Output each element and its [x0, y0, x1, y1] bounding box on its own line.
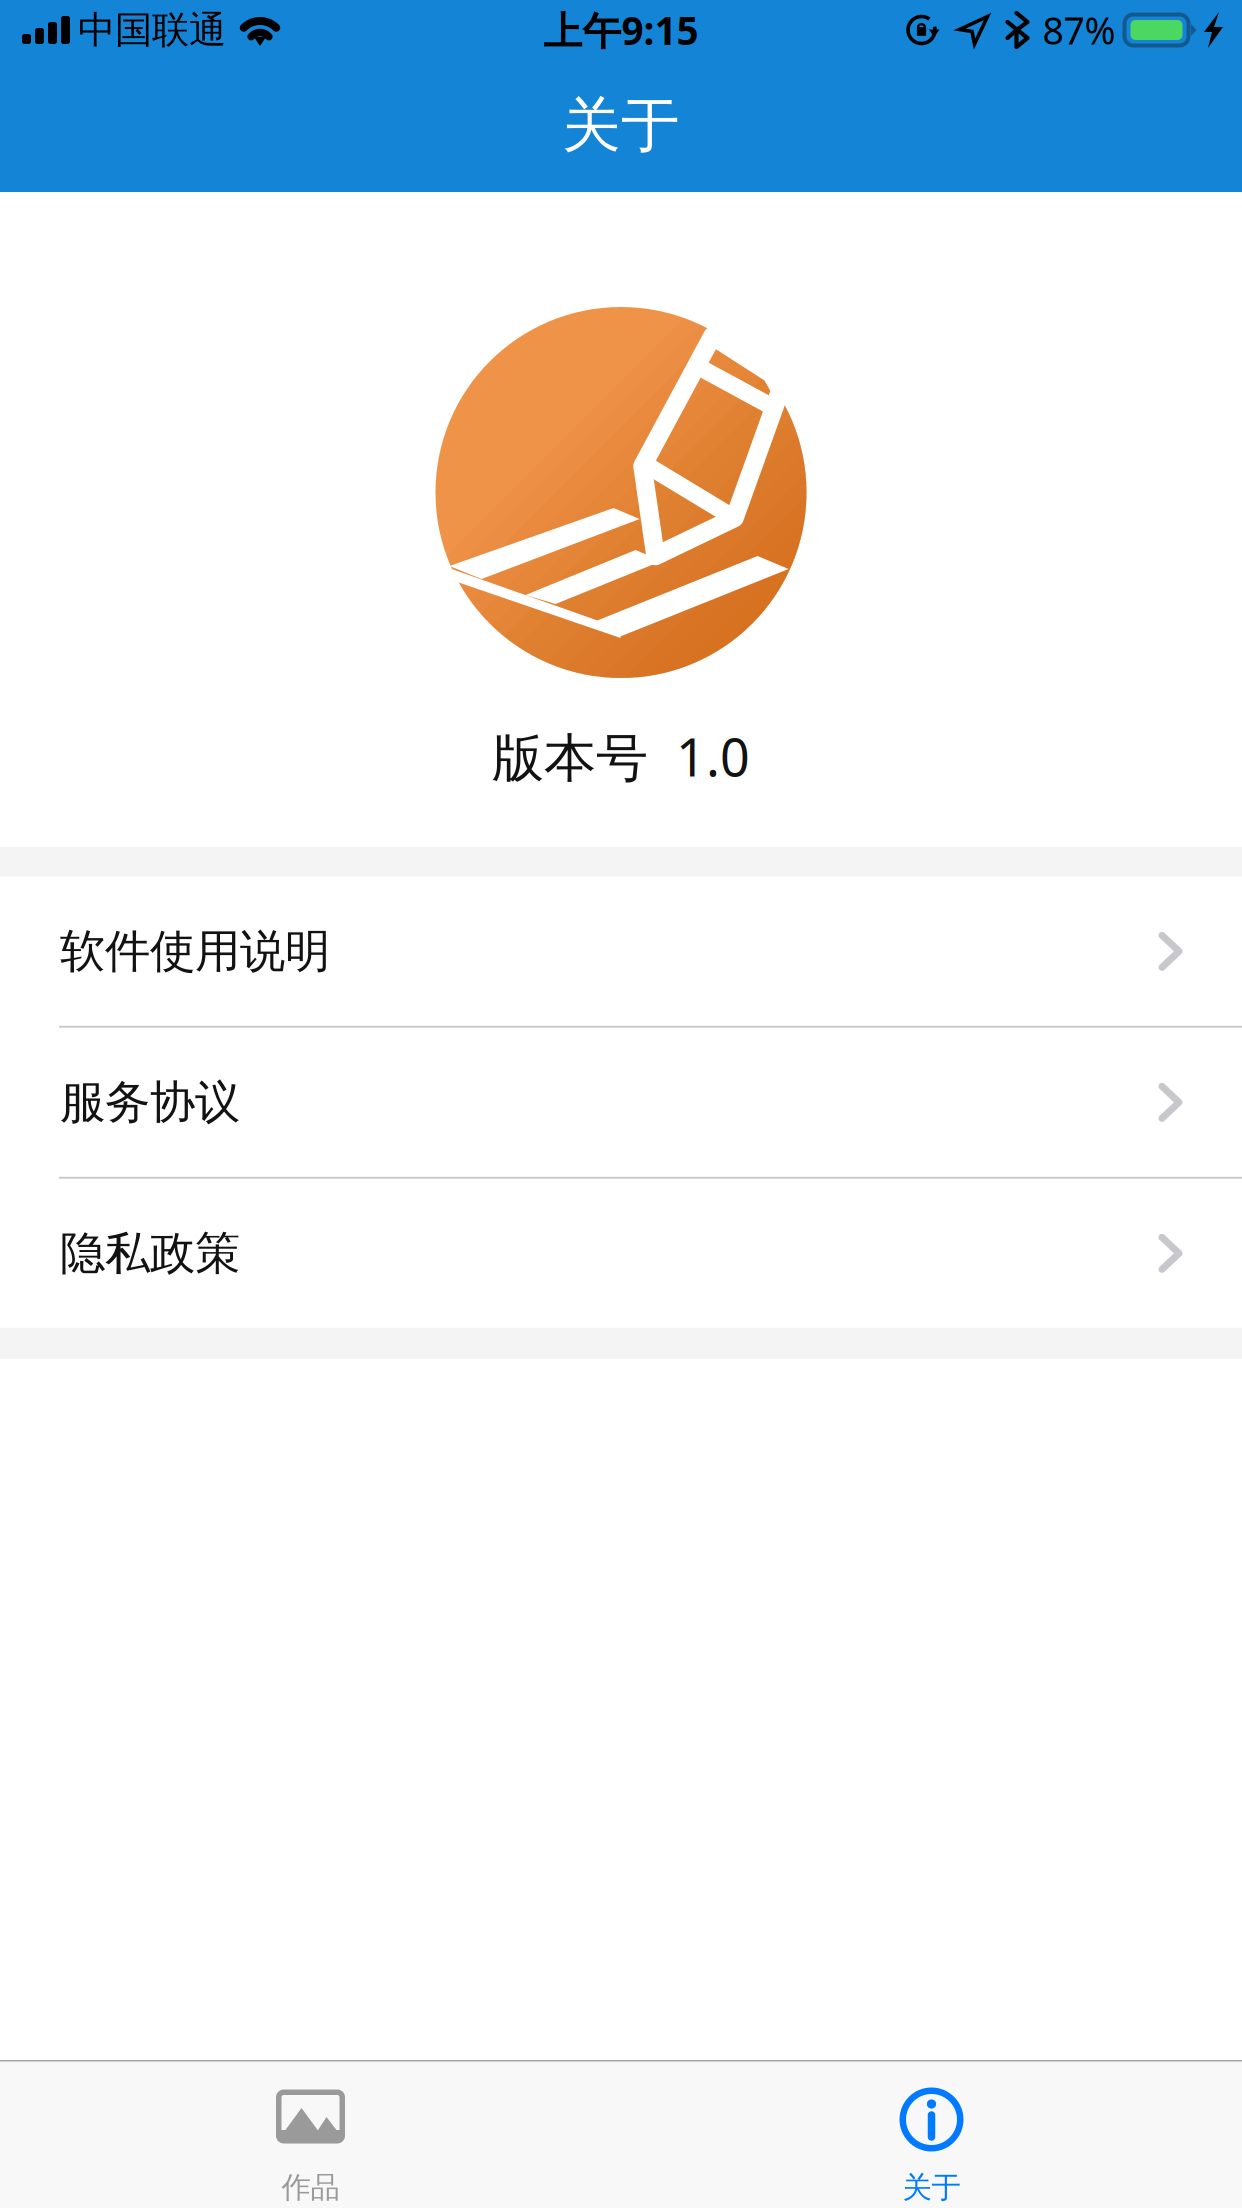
staticText: 隐私政策: [60, 1225, 240, 1282]
staticText: 87%: [1042, 5, 1115, 55]
staticText: 服务协议: [60, 1074, 240, 1131]
staticText: 中国联通: [78, 6, 226, 53]
button[interactable]: 服务协议: [0, 1028, 1242, 1177]
staticText: 版本号 1.0: [492, 721, 750, 792]
staticText: 作品: [281, 2169, 339, 2206]
button[interactable]: 作品: [0, 2060, 621, 2208]
staticText: 关于: [562, 88, 680, 162]
staticText: 上午9:15: [543, 4, 698, 56]
button[interactable]: 关于: [621, 2060, 1242, 2208]
button[interactable]: 隐私政策: [0, 1179, 1242, 1328]
button[interactable]: 软件使用说明: [0, 877, 1242, 1026]
staticText: 软件使用说明: [60, 923, 330, 980]
staticText: 关于: [902, 2169, 960, 2206]
